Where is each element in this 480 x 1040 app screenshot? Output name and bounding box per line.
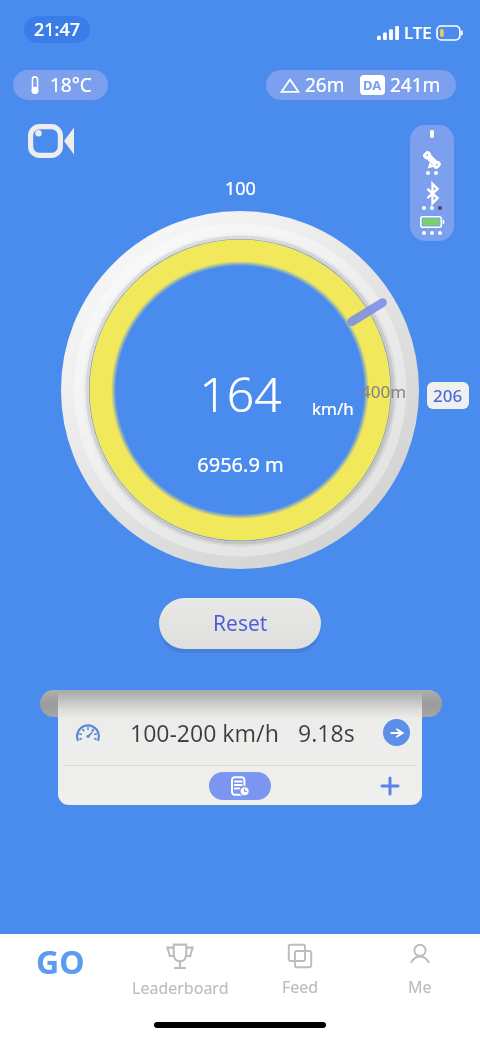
staticText: 241m xyxy=(390,72,441,98)
staticText: 164 xyxy=(199,361,282,426)
staticText: 206 xyxy=(433,384,463,407)
staticText: 400m xyxy=(361,380,407,403)
staticText: LTE xyxy=(404,21,432,44)
staticText: 6956.9 m xyxy=(197,451,284,478)
button[interactable]: Sensor status xyxy=(410,125,454,241)
button[interactable]: 100-200 km/h xyxy=(74,700,410,765)
staticText: km/h xyxy=(312,397,354,420)
staticText: Me xyxy=(408,976,432,998)
button[interactable]: Leaderboard xyxy=(120,934,240,1006)
staticText: 100 xyxy=(225,176,256,201)
button[interactable]: Feed xyxy=(240,934,360,1006)
button[interactable]: Log xyxy=(209,772,271,800)
staticText: 9.18s xyxy=(298,717,355,748)
staticText: 100-200 km/h xyxy=(130,717,279,748)
staticText: Feed xyxy=(282,976,319,998)
staticText: 26m xyxy=(305,72,345,98)
button[interactable]: Reset xyxy=(159,598,321,649)
button[interactable]: Record video xyxy=(28,124,74,158)
staticText: 18°C xyxy=(50,72,92,98)
button[interactable]: Add xyxy=(376,772,404,800)
button[interactable]: GO xyxy=(0,934,120,1006)
staticText: GO xyxy=(36,940,85,984)
button[interactable]: Me xyxy=(360,934,480,1006)
staticText: DA xyxy=(363,76,382,94)
staticText: 21:47 xyxy=(34,17,81,42)
button[interactable]: Details xyxy=(383,719,410,746)
staticText: Reset xyxy=(213,609,268,638)
staticText: Leaderboard xyxy=(132,977,229,999)
